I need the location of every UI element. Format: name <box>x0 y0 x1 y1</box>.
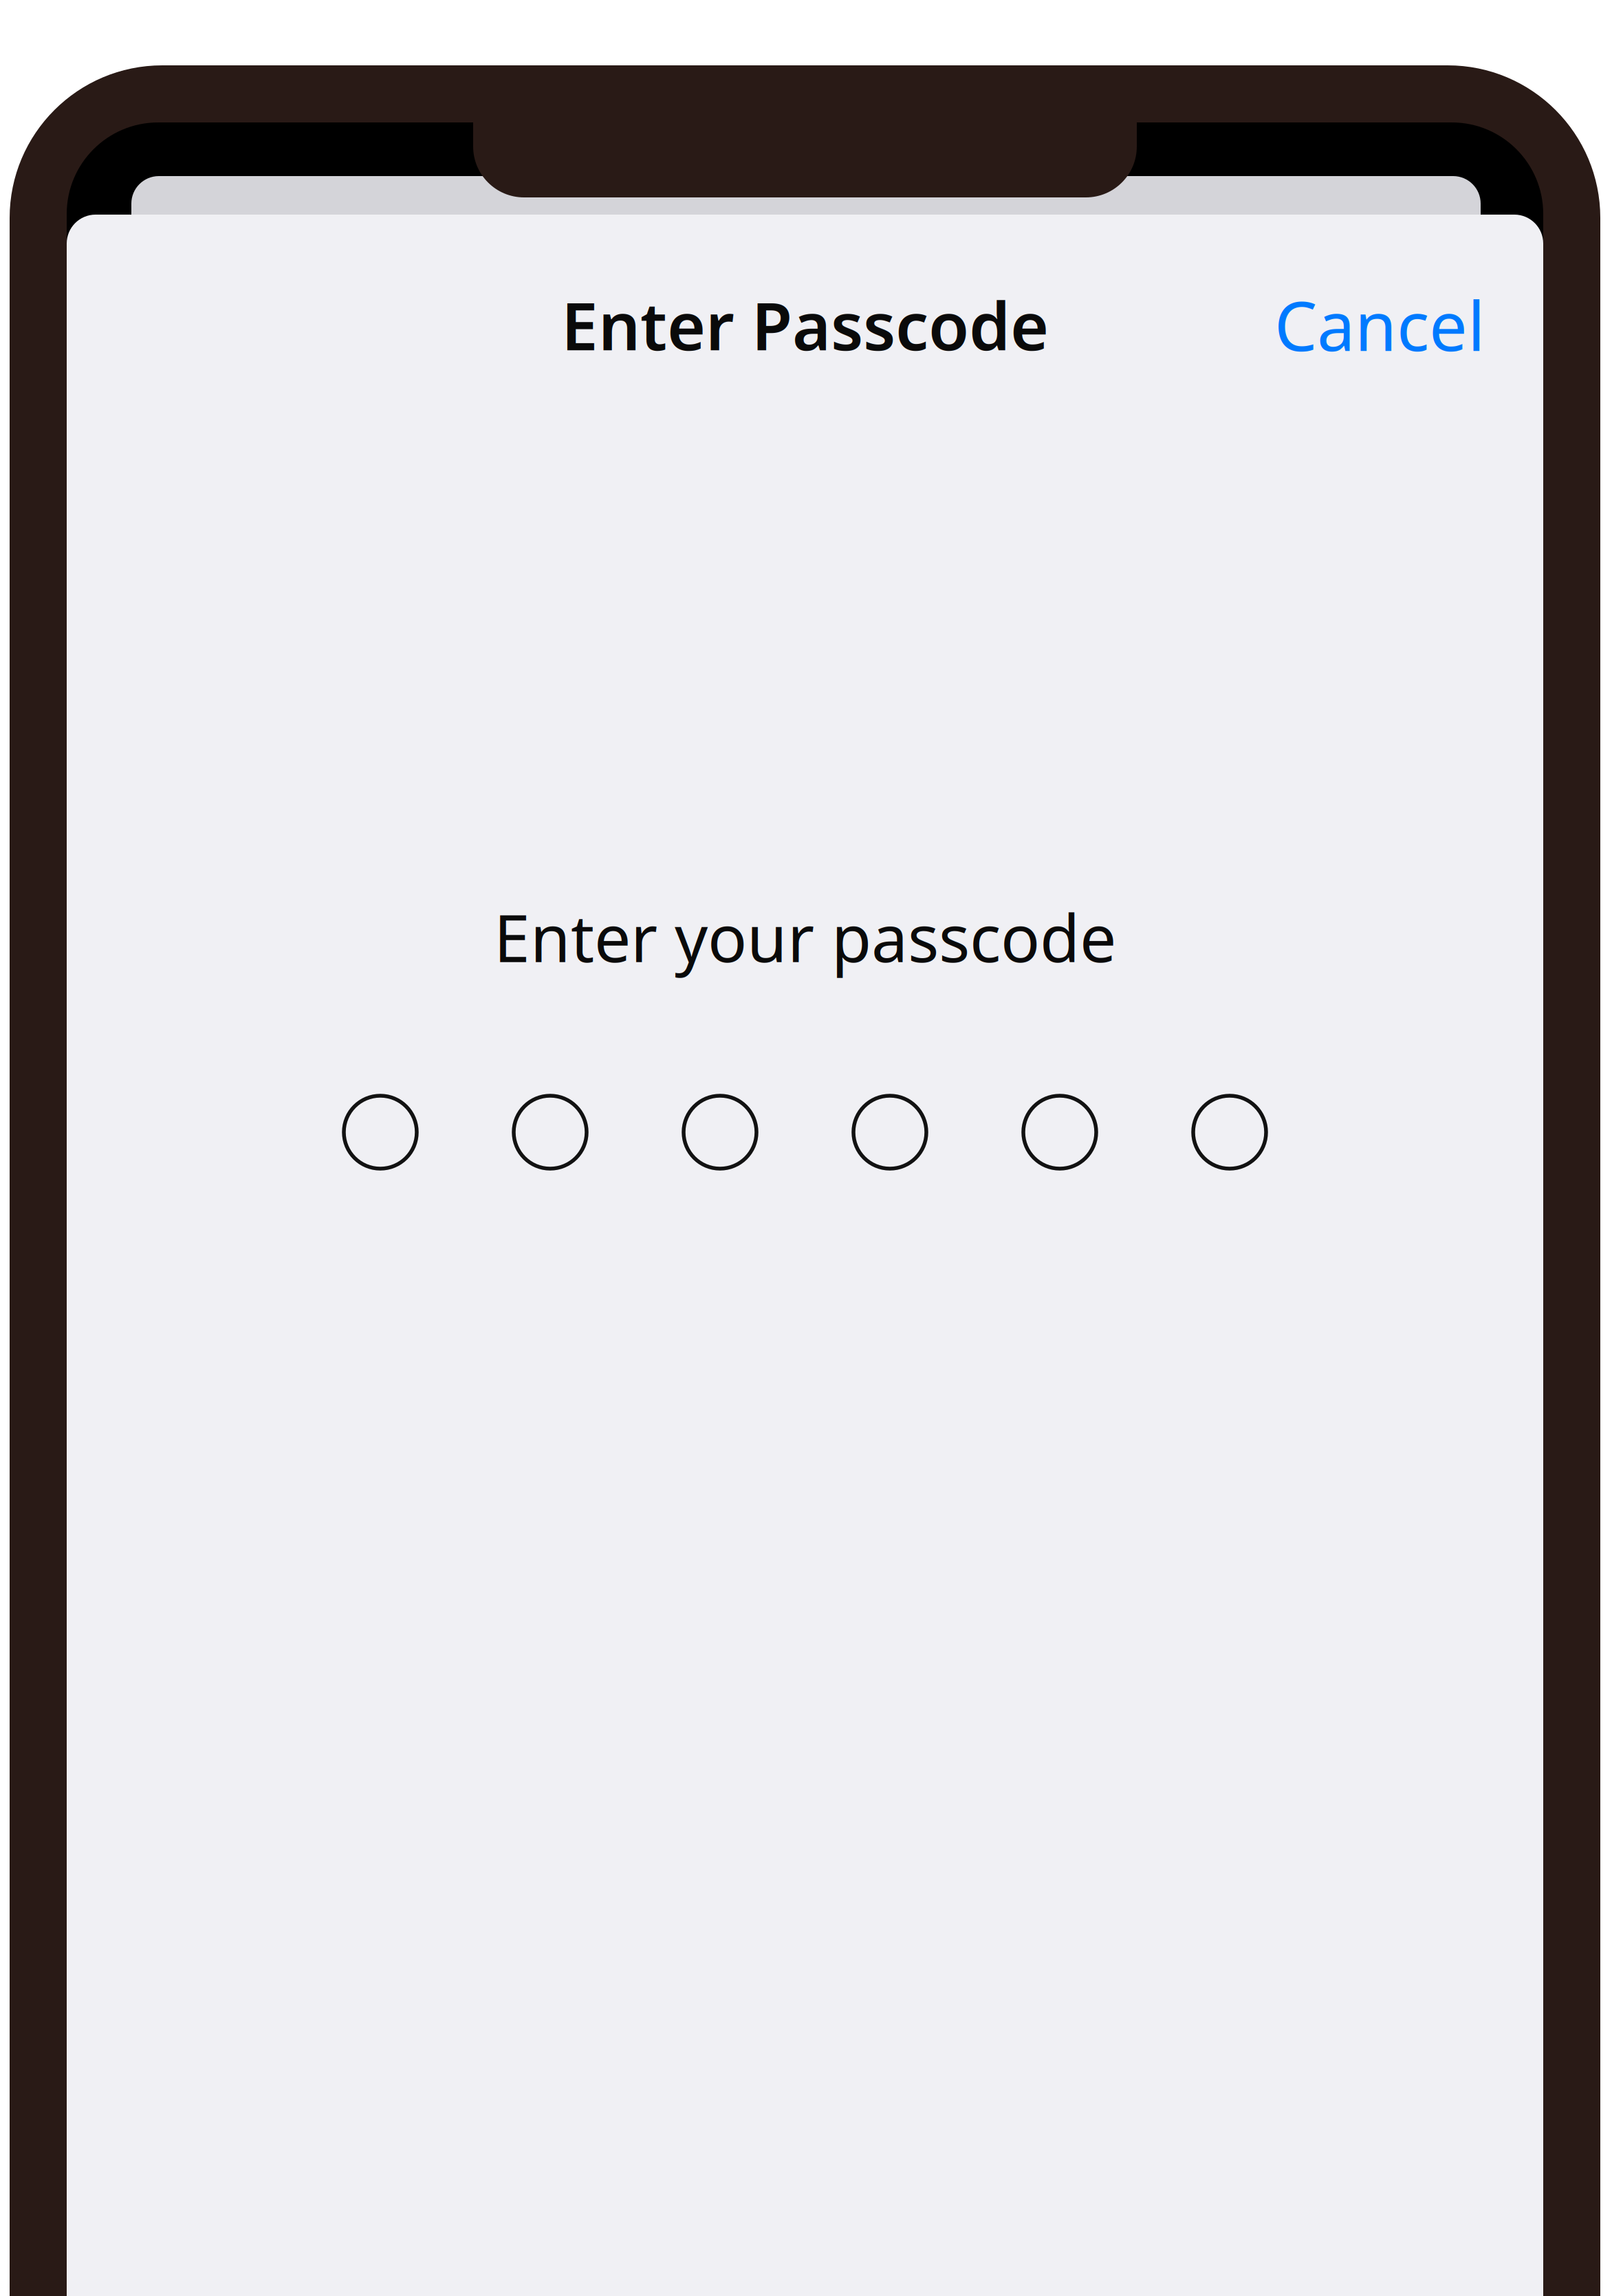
staticText: Enter Passcode <box>561 281 1049 369</box>
staticText: Enter your passcode <box>494 894 1116 980</box>
staticText: Cancel <box>1274 280 1485 370</box>
button[interactable]: Cancel <box>1256 277 1503 373</box>
